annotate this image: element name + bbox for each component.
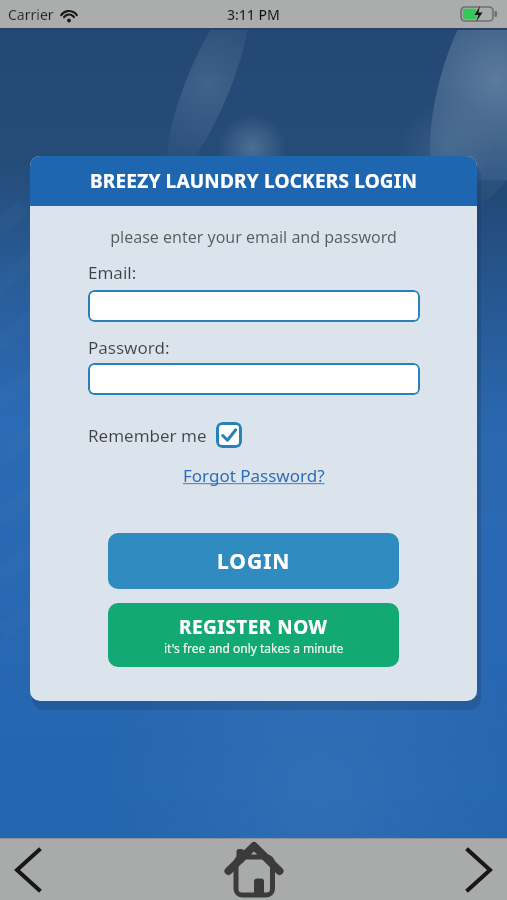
staticText: REGISTER NOW <box>179 614 328 640</box>
button[interactable]: Remember me <box>88 422 242 448</box>
staticText: Remember me <box>88 424 207 447</box>
staticText: Password: <box>88 336 170 359</box>
staticText: Email: <box>88 261 137 284</box>
staticText: 3:11 PM <box>227 5 280 24</box>
button[interactable] <box>6 848 50 892</box>
button[interactable]: Forgot Password? <box>183 464 325 487</box>
button[interactable] <box>225 841 283 899</box>
button[interactable]: REGISTER NOW <box>108 603 399 667</box>
staticText: please enter your email and password <box>30 226 477 248</box>
button[interactable] <box>88 290 420 322</box>
button[interactable] <box>457 848 501 892</box>
button[interactable] <box>88 363 420 395</box>
staticText: Carrier <box>8 5 54 24</box>
staticText: LOGIN <box>217 547 291 576</box>
button[interactable]: LOGIN <box>108 533 399 589</box>
staticText: it's free and only takes a minute <box>164 640 344 656</box>
staticText: BREEZY LAUNDRY LOCKERS LOGIN <box>90 168 418 194</box>
